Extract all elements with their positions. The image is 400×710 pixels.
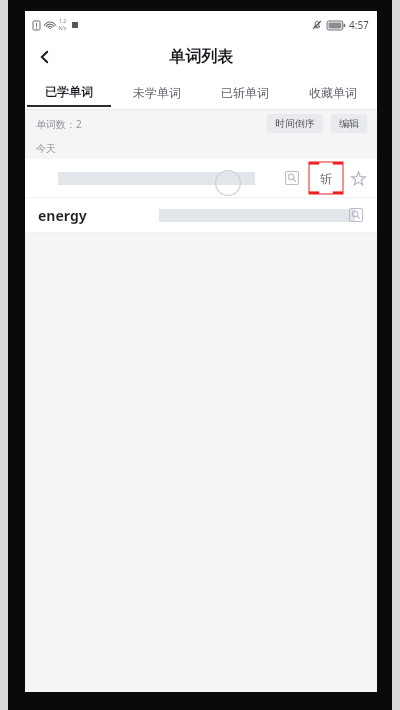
- button[interactable]: 已学单词: [25, 76, 113, 109]
- button[interactable]: Favorite: [345, 165, 371, 191]
- staticText: 斩: [320, 171, 332, 186]
- button[interactable]: 收藏单词: [289, 76, 377, 109]
- button[interactable]: 未学单词: [113, 76, 201, 109]
- button[interactable]: 已斩单词: [201, 76, 289, 109]
- staticText: 4:57: [349, 18, 369, 32]
- staticText: 未学单词: [133, 85, 181, 100]
- button[interactable]: Back: [25, 38, 65, 76]
- staticText: 1.2: [59, 18, 67, 25]
- staticText: 时间倒序: [275, 117, 315, 130]
- staticText: 已学单词: [45, 84, 93, 99]
- staticText: 单词列表: [169, 47, 233, 67]
- staticText: 收藏单词: [309, 85, 357, 100]
- staticText: 单词数：2: [36, 117, 82, 131]
- staticText: 已斩单词: [221, 85, 269, 100]
- staticText: energy: [38, 206, 87, 225]
- button[interactable]: 时间倒序: [267, 114, 323, 133]
- button[interactable]: Look up word: [343, 202, 369, 228]
- staticText: 编辑: [339, 117, 359, 130]
- button[interactable]: energy: [25, 198, 377, 232]
- button[interactable]: Look up word: [279, 165, 305, 191]
- button[interactable]: Look up word: [25, 159, 377, 197]
- button[interactable]: 编辑: [331, 114, 367, 133]
- staticText: K/s: [59, 25, 67, 32]
- button[interactable]: 斩: [309, 162, 343, 194]
- staticText: 今天: [36, 142, 56, 155]
